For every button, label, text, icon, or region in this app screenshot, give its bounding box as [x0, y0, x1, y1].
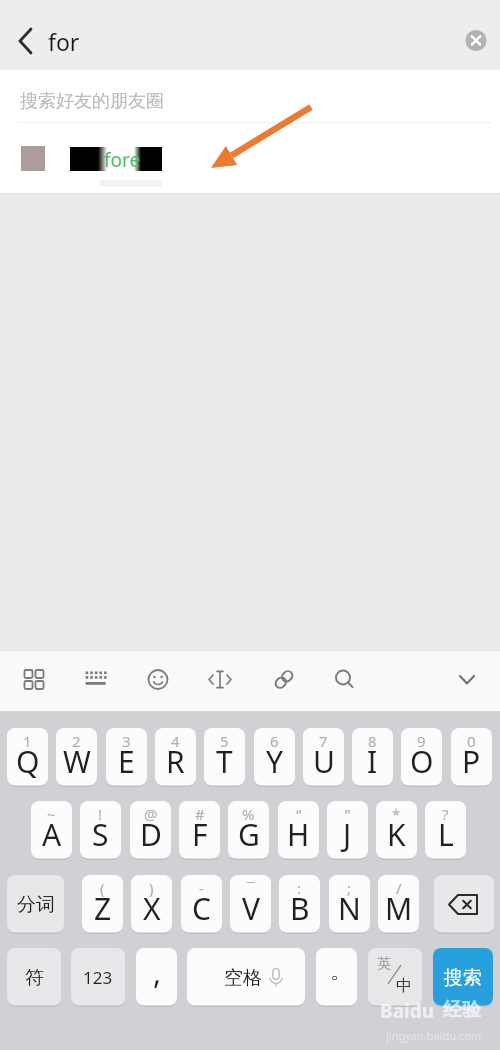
staticText: jingyan.baidu.com [386, 1028, 482, 1043]
button[interactable]: 6 [254, 728, 295, 787]
button[interactable]: 5 [204, 728, 245, 787]
button[interactable]: 1 [7, 728, 48, 787]
button[interactable]: ! [80, 801, 121, 860]
button[interactable]: ? [425, 801, 466, 860]
button[interactable]: 符 [7, 948, 61, 1007]
staticText: U [313, 741, 335, 782]
staticText: 7 [319, 731, 328, 751]
staticText: for [48, 26, 80, 57]
button[interactable]: “ [278, 801, 319, 860]
staticText: R [166, 741, 185, 782]
staticText: ! [98, 804, 103, 824]
button[interactable]: @ [130, 801, 171, 860]
staticText: V [242, 888, 260, 929]
button[interactable] [454, 18, 498, 62]
staticText: fore [104, 147, 141, 173]
staticText: - [199, 878, 204, 898]
button[interactable]: ( [82, 875, 123, 934]
staticText: ; [347, 878, 352, 898]
button[interactable] [198, 657, 242, 701]
staticText: 3 [122, 731, 131, 751]
staticText: 经验 [443, 998, 481, 1022]
staticText: @ [144, 804, 158, 824]
button[interactable]: ~ [31, 801, 72, 860]
button[interactable] [262, 657, 306, 701]
button[interactable]: ¯ [230, 875, 271, 934]
staticText: ” [345, 804, 351, 824]
staticText: Q [16, 741, 40, 782]
button[interactable]: fore [0, 132, 500, 187]
button[interactable]: 空格 [187, 948, 305, 1007]
staticText: B [290, 888, 310, 929]
button[interactable]: - [181, 875, 222, 934]
staticText: Y [266, 741, 283, 782]
staticText: / [396, 878, 402, 898]
staticText: A [42, 814, 62, 855]
staticText: D [140, 814, 162, 855]
button[interactable] [136, 657, 180, 701]
button[interactable]: : [279, 875, 320, 934]
button[interactable]: 搜索 [433, 948, 493, 1007]
staticText: ? [442, 804, 449, 824]
button[interactable]: 9 [401, 728, 442, 787]
button[interactable] [8, 18, 52, 62]
button[interactable]: 7 [303, 728, 344, 787]
staticText: Baidu [380, 998, 435, 1024]
button[interactable] [12, 657, 56, 701]
button[interactable]: 英 [368, 948, 422, 1007]
staticText: ) [149, 878, 154, 898]
staticText: W [63, 741, 91, 782]
button[interactable]: 搜索好友的朋友圈 [0, 80, 500, 122]
staticText: 2 [72, 731, 81, 751]
button[interactable]: 分词 [7, 875, 64, 934]
staticText: 。 [330, 957, 352, 985]
button[interactable]: 。 [316, 948, 357, 1007]
button[interactable] [323, 657, 367, 701]
staticText: 5 [220, 731, 229, 751]
button[interactable]: % [228, 801, 269, 860]
staticText: L [438, 814, 454, 855]
button[interactable]: # [179, 801, 220, 860]
staticText: 英 [377, 955, 391, 973]
staticText: N [338, 888, 361, 929]
button[interactable] [73, 657, 117, 701]
button[interactable] [434, 875, 494, 934]
staticText: , [153, 952, 162, 993]
staticText: J [343, 814, 352, 855]
staticText: S [92, 814, 109, 855]
staticText: 0 [467, 731, 476, 751]
staticText: 分词 [17, 893, 55, 917]
staticText: F [192, 814, 208, 855]
staticText: 搜索好友的朋友圈 [20, 90, 164, 113]
button[interactable]: 8 [352, 728, 393, 787]
staticText: 123 [83, 966, 113, 989]
button[interactable]: 2 [56, 728, 97, 787]
button[interactable]: ” [327, 801, 368, 860]
staticText: T [216, 741, 233, 782]
button[interactable]: ; [329, 875, 370, 934]
staticText: O [410, 741, 434, 782]
staticText: 8 [368, 731, 377, 751]
staticText: # [195, 804, 205, 824]
staticText: 符 [25, 966, 44, 990]
staticText: ( [100, 878, 105, 898]
staticText: E [118, 741, 135, 782]
staticText: * [392, 804, 401, 824]
button[interactable]: ) [131, 875, 172, 934]
staticText: 4 [171, 731, 180, 751]
button[interactable]: , [136, 948, 177, 1007]
button[interactable]: 123 [71, 948, 125, 1007]
staticText: 搜索 [444, 966, 482, 990]
staticText: : [297, 878, 302, 898]
staticText: 中 [396, 976, 412, 996]
button[interactable]: * [376, 801, 417, 860]
button[interactable]: 3 [106, 728, 147, 787]
button[interactable]: 4 [155, 728, 196, 787]
staticText: 空格 [224, 966, 262, 990]
button[interactable]: 0 [451, 728, 492, 787]
button[interactable]: / [378, 875, 419, 934]
staticText: ¯ [247, 878, 255, 898]
staticText: % [242, 804, 255, 824]
staticText: H [287, 814, 310, 855]
button[interactable] [445, 657, 489, 701]
